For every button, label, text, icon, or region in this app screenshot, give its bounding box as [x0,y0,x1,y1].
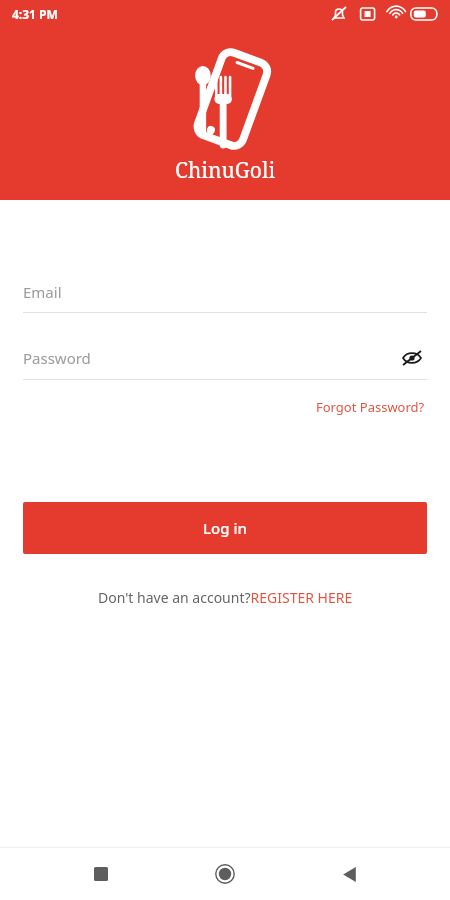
button[interactable]: Password [23,343,427,380]
staticText: 4:31 PM [12,6,58,22]
button[interactable]: Recent apps [78,851,124,897]
staticText: Forgot Password? [316,398,425,416]
staticText: Password [23,348,91,368]
button[interactable]: Don't have an account?REGISTER HERE [94,586,357,609]
staticText: Log in [203,518,247,538]
button[interactable]: Show password [397,343,427,373]
button[interactable]: Forgot Password? [314,396,427,418]
button[interactable]: Back [326,851,372,897]
button[interactable]: Log in [23,502,427,554]
staticText: Don't have an account?REGISTER HERE [98,588,353,607]
button[interactable]: Home [202,851,248,897]
staticText: Email [23,282,62,302]
button[interactable]: Email [23,282,427,313]
staticText: ChinuGoli [175,156,276,185]
